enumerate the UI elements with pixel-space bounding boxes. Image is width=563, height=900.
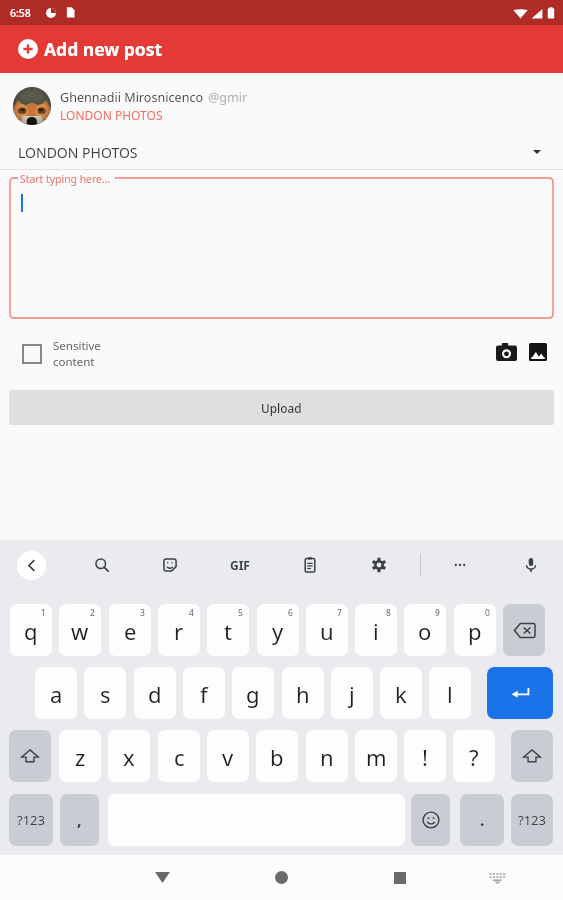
button[interactable]: Hide keyboard [478,855,516,900]
button[interactable]: Enter [487,667,553,719]
button[interactable]: Pick image [523,337,553,367]
button[interactable]: i [355,604,397,656]
button[interactable]: Emoji [411,794,450,846]
button[interactable]: f [183,667,225,719]
button[interactable]: Upload [9,390,554,425]
button[interactable]: n [306,730,348,782]
button[interactable]: Stickers [153,540,187,590]
button[interactable]: s [84,667,126,719]
button[interactable]: Settings [362,540,396,590]
button[interactable]: l [429,667,471,719]
button[interactable]: ? [453,730,495,782]
staticText: d [148,679,162,709]
button[interactable]: LONDON PHOTOS [0,134,563,170]
staticText: ?123 [17,811,45,829]
staticText: LONDON PHOTOS [18,143,138,162]
button[interactable]: p [454,604,496,656]
button[interactable]: . [460,794,504,846]
button[interactable]: e [109,604,151,656]
staticText: u [320,616,334,646]
staticText: 6 [288,607,293,619]
button[interactable]: b [256,730,298,782]
button[interactable]: GIF [222,540,258,590]
staticText: c [174,742,185,772]
button[interactable]: r [158,604,200,656]
staticText: x [123,742,135,772]
staticText: . [480,809,485,831]
button[interactable]: c [158,730,200,782]
button[interactable]: k [380,667,422,719]
button[interactable]: z [59,730,101,782]
button[interactable]: ! [404,730,446,782]
button[interactable]: m [355,730,397,782]
staticText: h [296,679,310,709]
button[interactable]: ?123 [511,794,553,846]
button[interactable]: d [134,667,176,719]
staticText: , [77,809,82,831]
button[interactable]: Home [262,855,300,900]
button[interactable]: Clipboard [293,540,327,590]
staticText: z [75,742,86,772]
staticText: y [272,616,284,646]
button[interactable]: Voice input [514,540,548,590]
staticText: Sensitive [53,338,101,354]
button[interactable]: q [10,604,52,656]
button[interactable]: y [257,604,299,656]
staticText: w [71,616,89,646]
staticText: 7 [337,607,342,619]
button[interactable]: ?123 [9,794,53,846]
button[interactable]: , [60,794,99,846]
staticText: ! [422,742,428,772]
button[interactable]: o [404,604,446,656]
staticText: a [50,679,63,709]
button[interactable]: More options [443,540,477,590]
staticText: @gmir [208,89,248,106]
staticText: ?123 [518,811,546,829]
staticText: LONDON PHOTOS [60,107,163,123]
staticText: p [468,616,482,646]
staticText: GIF [230,557,250,573]
button[interactable]: a [35,667,77,719]
staticText: o [418,616,432,646]
staticText: 0 [485,607,490,619]
button[interactable]: g [232,667,274,719]
button[interactable]: Back [17,551,46,580]
button[interactable]: Recents [381,855,419,900]
staticText: Start typing here... [20,172,111,186]
button[interactable]: u [306,604,348,656]
staticText: 1 [41,607,46,619]
staticText: Upload [261,400,302,416]
button[interactable]: h [282,667,324,719]
staticText: 4 [189,607,194,619]
staticText: 9 [435,607,440,619]
button[interactable]: Add new post [0,25,563,73]
button[interactable]: Take photo [491,337,521,367]
button[interactable]: Back [143,855,181,900]
staticText: content [53,354,95,370]
staticText: g [246,679,260,709]
staticText: 6:58 [10,6,31,20]
staticText: 8 [386,607,391,619]
staticText: k [395,679,407,709]
staticText: m [366,742,387,772]
staticText: Ghennadii Mirosnicenco [60,89,204,106]
staticText: 3 [140,607,145,619]
button[interactable]: Shift [511,730,553,782]
button[interactable]: v [207,730,249,782]
button[interactable]: Shift [9,730,51,782]
staticText: n [320,742,334,772]
button[interactable]: Search [85,540,119,590]
button[interactable]: t [207,604,249,656]
staticText: q [24,616,38,646]
button[interactable]: j [331,667,373,719]
staticText: 2 [90,607,95,619]
button[interactable]: w [59,604,101,656]
staticText: b [270,742,284,772]
staticText: ? [469,742,479,772]
staticText: Add new post [44,37,163,61]
button[interactable]: Backspace [503,604,545,656]
button[interactable]: Sensitive [23,338,101,370]
button[interactable]: x [108,730,150,782]
staticText: 5 [238,607,243,619]
